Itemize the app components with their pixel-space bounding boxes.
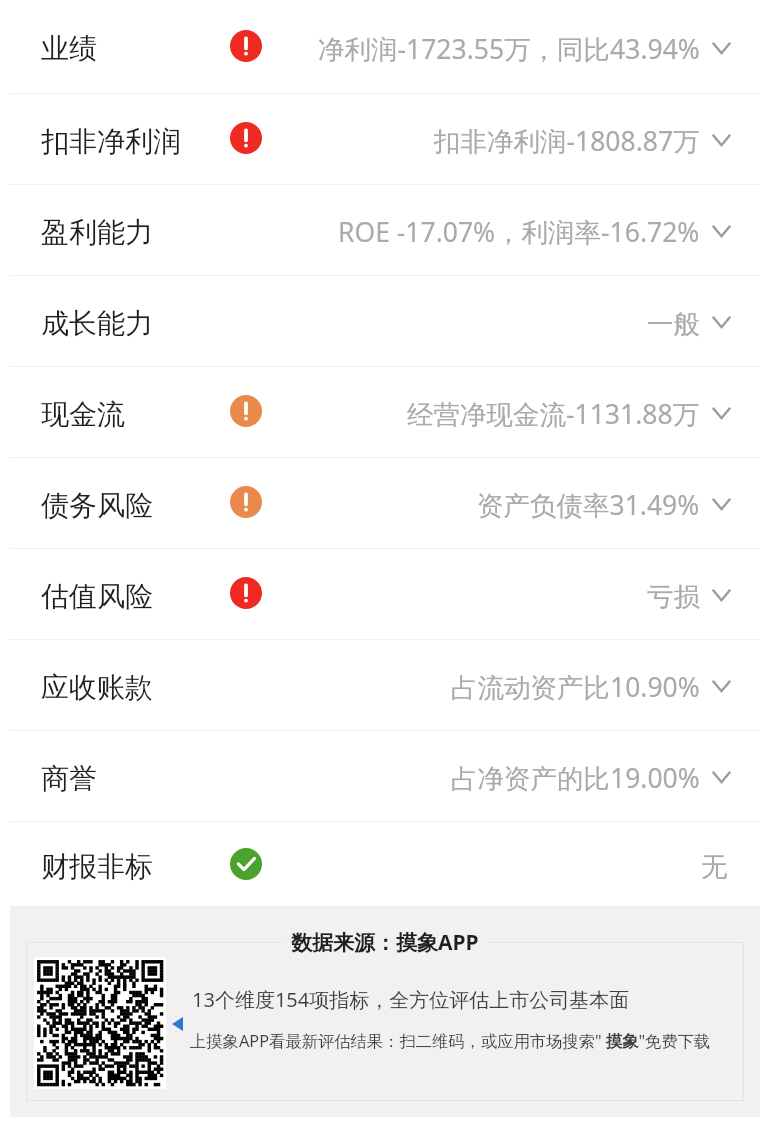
other: 展开 (712, 225, 731, 237)
staticText: 扣非净利润-1808.87万 (434, 123, 700, 159)
staticText: 债务风险 (41, 488, 153, 523)
other: 展开 (712, 407, 731, 419)
staticText: ROE -17.07%，利润率-16.72% (338, 214, 700, 250)
button[interactable]: 商誉 (0, 731, 770, 821)
staticText: 一般 (647, 307, 700, 340)
staticText: 现金流 (41, 397, 125, 432)
button[interactable]: 成长能力 (0, 276, 770, 366)
staticText: 业绩 (41, 31, 97, 66)
staticText: 净利润-1723.55万，同比43.94% (318, 31, 700, 67)
button[interactable]: 债务风险 (0, 458, 770, 548)
other: 展开 (712, 316, 731, 328)
staticText: 上摸象APP看最新评估结果：扫二维码，或应用市场搜索" 摸象"免费下载 (190, 1030, 711, 1052)
button[interactable]: 财报非标 (0, 822, 770, 907)
other: 展开 (712, 42, 731, 54)
button[interactable]: 盈利能力 (0, 185, 770, 275)
other: 展开 (712, 134, 731, 146)
button[interactable]: 现金流 (0, 367, 770, 457)
staticText: 占流动资产比10.90% (451, 669, 700, 705)
button[interactable]: 估值风险 (0, 549, 770, 639)
other: 展开 (712, 589, 731, 601)
staticText: 财报非标 (41, 849, 153, 884)
staticText: 资产负债率31.49% (477, 487, 700, 523)
staticText: 经营净现金流-1131.88万 (407, 396, 700, 432)
staticText: 数据来源：摸象APP (291, 928, 479, 957)
button[interactable]: 二维码 (34, 957, 166, 1089)
other: 展开 (712, 498, 731, 510)
staticText: 商誉 (41, 761, 97, 796)
staticText: 成长能力 (41, 306, 153, 341)
button[interactable]: 应收账款 (0, 640, 770, 730)
other: 展开 (712, 680, 731, 692)
staticText: 无 (701, 850, 728, 883)
staticText: 估值风险 (41, 579, 153, 614)
staticText: 盈利能力 (41, 215, 153, 250)
staticText: 亏损 (647, 580, 700, 613)
staticText: 占净资产的比19.00% (451, 760, 700, 796)
other: 展开 (712, 771, 731, 783)
staticText: 扣非净利润 (41, 124, 181, 159)
button[interactable]: 业绩 (0, 0, 770, 93)
button[interactable]: 扣非净利润 (0, 94, 770, 184)
staticText: 13个维度154项指标，全方位评估上市公司基本面 (192, 986, 630, 1013)
staticText: 应收账款 (41, 670, 153, 705)
